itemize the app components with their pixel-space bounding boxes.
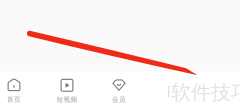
staticText: 首页: [7, 95, 21, 104]
staticText: 会员: [112, 95, 126, 104]
staticText: 短视频: [56, 95, 77, 104]
button[interactable]: 我的: [144, 70, 197, 111]
button[interactable]: 首页: [0, 70, 40, 111]
button[interactable]: 短视频: [40, 70, 93, 111]
button[interactable]: 会员: [92, 70, 145, 111]
staticText: 购物: [216, 95, 230, 104]
staticText: 软件技巧: [171, 80, 240, 105]
staticText: 我的: [164, 95, 178, 104]
button[interactable]: 购物: [196, 70, 240, 111]
